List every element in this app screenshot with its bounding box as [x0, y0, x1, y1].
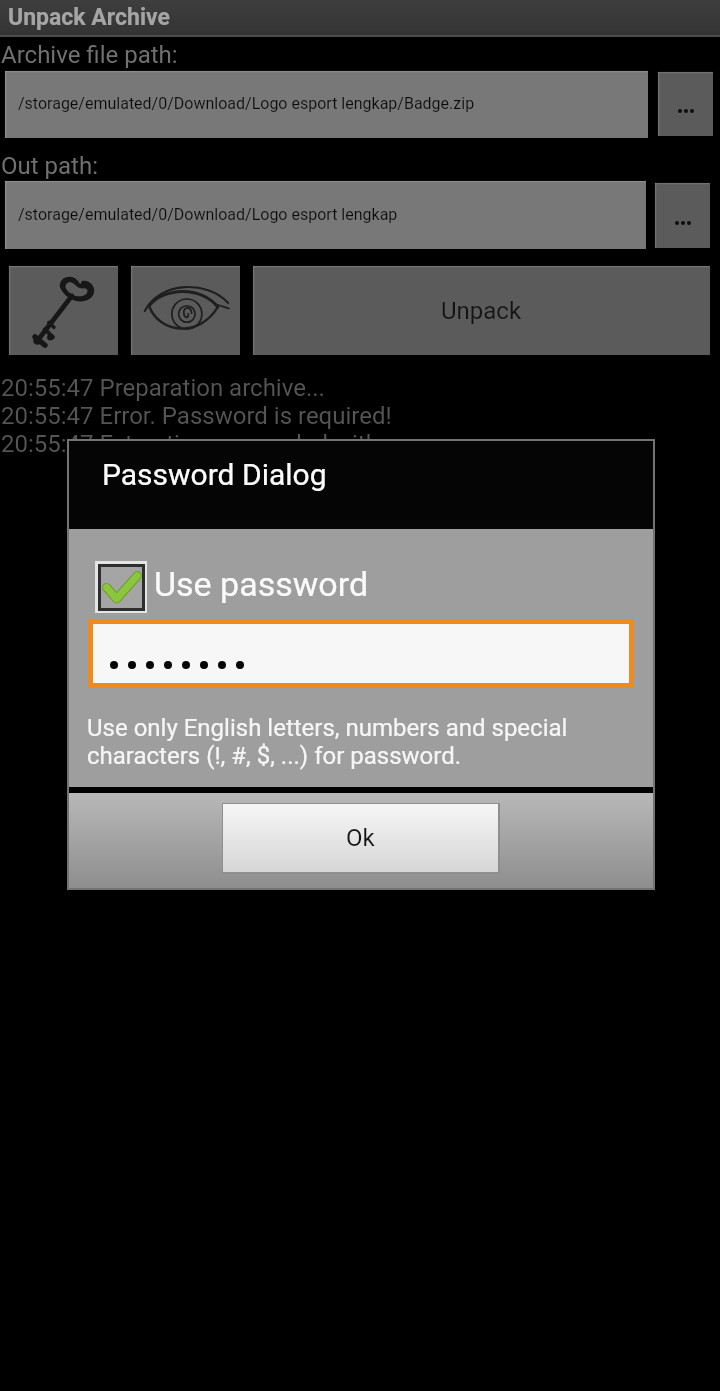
button[interactable]: Ok [223, 804, 498, 872]
button[interactable]: /storage/emulated/0/Download/Logo esport… [5, 181, 646, 249]
staticText: 20:55:47 Error. Password is required! [1, 402, 392, 430]
staticText: Unpack Archive [8, 4, 170, 31]
button[interactable]: Unpack [253, 266, 710, 355]
button[interactable]: Set password [9, 266, 118, 355]
staticText: /storage/emulated/0/Download/Logo esport… [18, 205, 398, 224]
button[interactable]: Browse archive file [658, 72, 713, 136]
button[interactable]: /storage/emulated/0/Download/Logo esport… [5, 71, 648, 138]
staticText: Use password [154, 564, 369, 604]
staticText: Password Dialog [102, 457, 327, 492]
staticText: Out path: [1, 152, 98, 180]
staticText: 20:55:47 Preparation archive... [1, 374, 325, 402]
staticText: /storage/emulated/0/Download/Logo esport… [18, 94, 475, 113]
staticText: Unpack [441, 297, 522, 325]
button[interactable] [93, 624, 629, 683]
button[interactable]: Use password [95, 561, 369, 613]
staticText: Archive file path: [1, 41, 178, 69]
button[interactable]: Browse out path [655, 183, 710, 248]
staticText: 20:55:47 Extraction was ended with error… [1, 430, 441, 458]
staticText: Use only English letters, numbers and sp… [87, 714, 568, 770]
staticText: Ok [346, 824, 375, 852]
button[interactable]: Show archive content [131, 266, 240, 355]
